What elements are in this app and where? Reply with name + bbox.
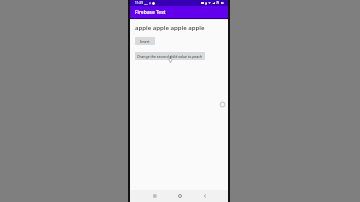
staticText: 11:39 [135,1,143,5]
button[interactable]: Home [175,191,185,201]
button[interactable]: Insert [135,37,155,45]
staticText: Change the second child value to peach [137,54,203,59]
staticText: apple apple apple apple [135,23,205,31]
staticText: 78 [216,1,220,5]
staticText: AM [144,2,148,5]
staticText: Firebase Test [135,9,166,16]
staticText: Insert [140,39,150,44]
button[interactable]: Change the second child value to peach [135,52,205,60]
button[interactable]: Back [200,191,210,201]
button[interactable]: Recents [150,191,160,201]
